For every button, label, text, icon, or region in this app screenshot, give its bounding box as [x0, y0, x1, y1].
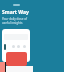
staticText: Your daily dose of useful insights	[2, 17, 28, 25]
staticText: Smart Way	[2, 9, 29, 16]
button[interactable]	[6, 52, 27, 66]
